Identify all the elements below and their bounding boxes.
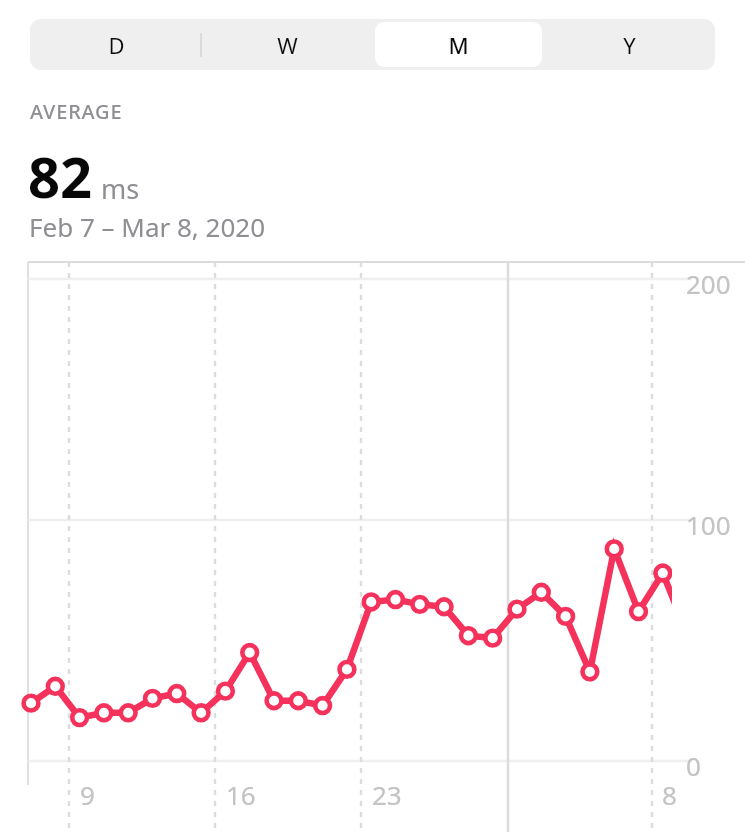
staticText: 100	[686, 507, 731, 542]
button[interactable]: W	[204, 22, 371, 67]
staticText: AVERAGE	[30, 98, 123, 125]
staticText: 82	[28, 138, 93, 214]
staticText: Feb 7 – Mar 8, 2020	[29, 209, 266, 244]
staticText: 0	[686, 748, 701, 783]
staticText: ms	[101, 170, 140, 207]
button[interactable]: M	[375, 22, 542, 67]
staticText: W	[277, 30, 298, 60]
staticText: 200	[686, 266, 731, 301]
button[interactable]: D	[32, 22, 200, 67]
staticText: D	[108, 30, 125, 60]
staticText: 8	[662, 777, 677, 812]
staticText: M	[448, 30, 469, 60]
staticText: 9	[80, 777, 95, 812]
button[interactable]: Y	[546, 22, 713, 67]
staticText: 23	[372, 777, 402, 812]
staticText: Y	[623, 30, 636, 60]
staticText: 16	[226, 777, 256, 812]
